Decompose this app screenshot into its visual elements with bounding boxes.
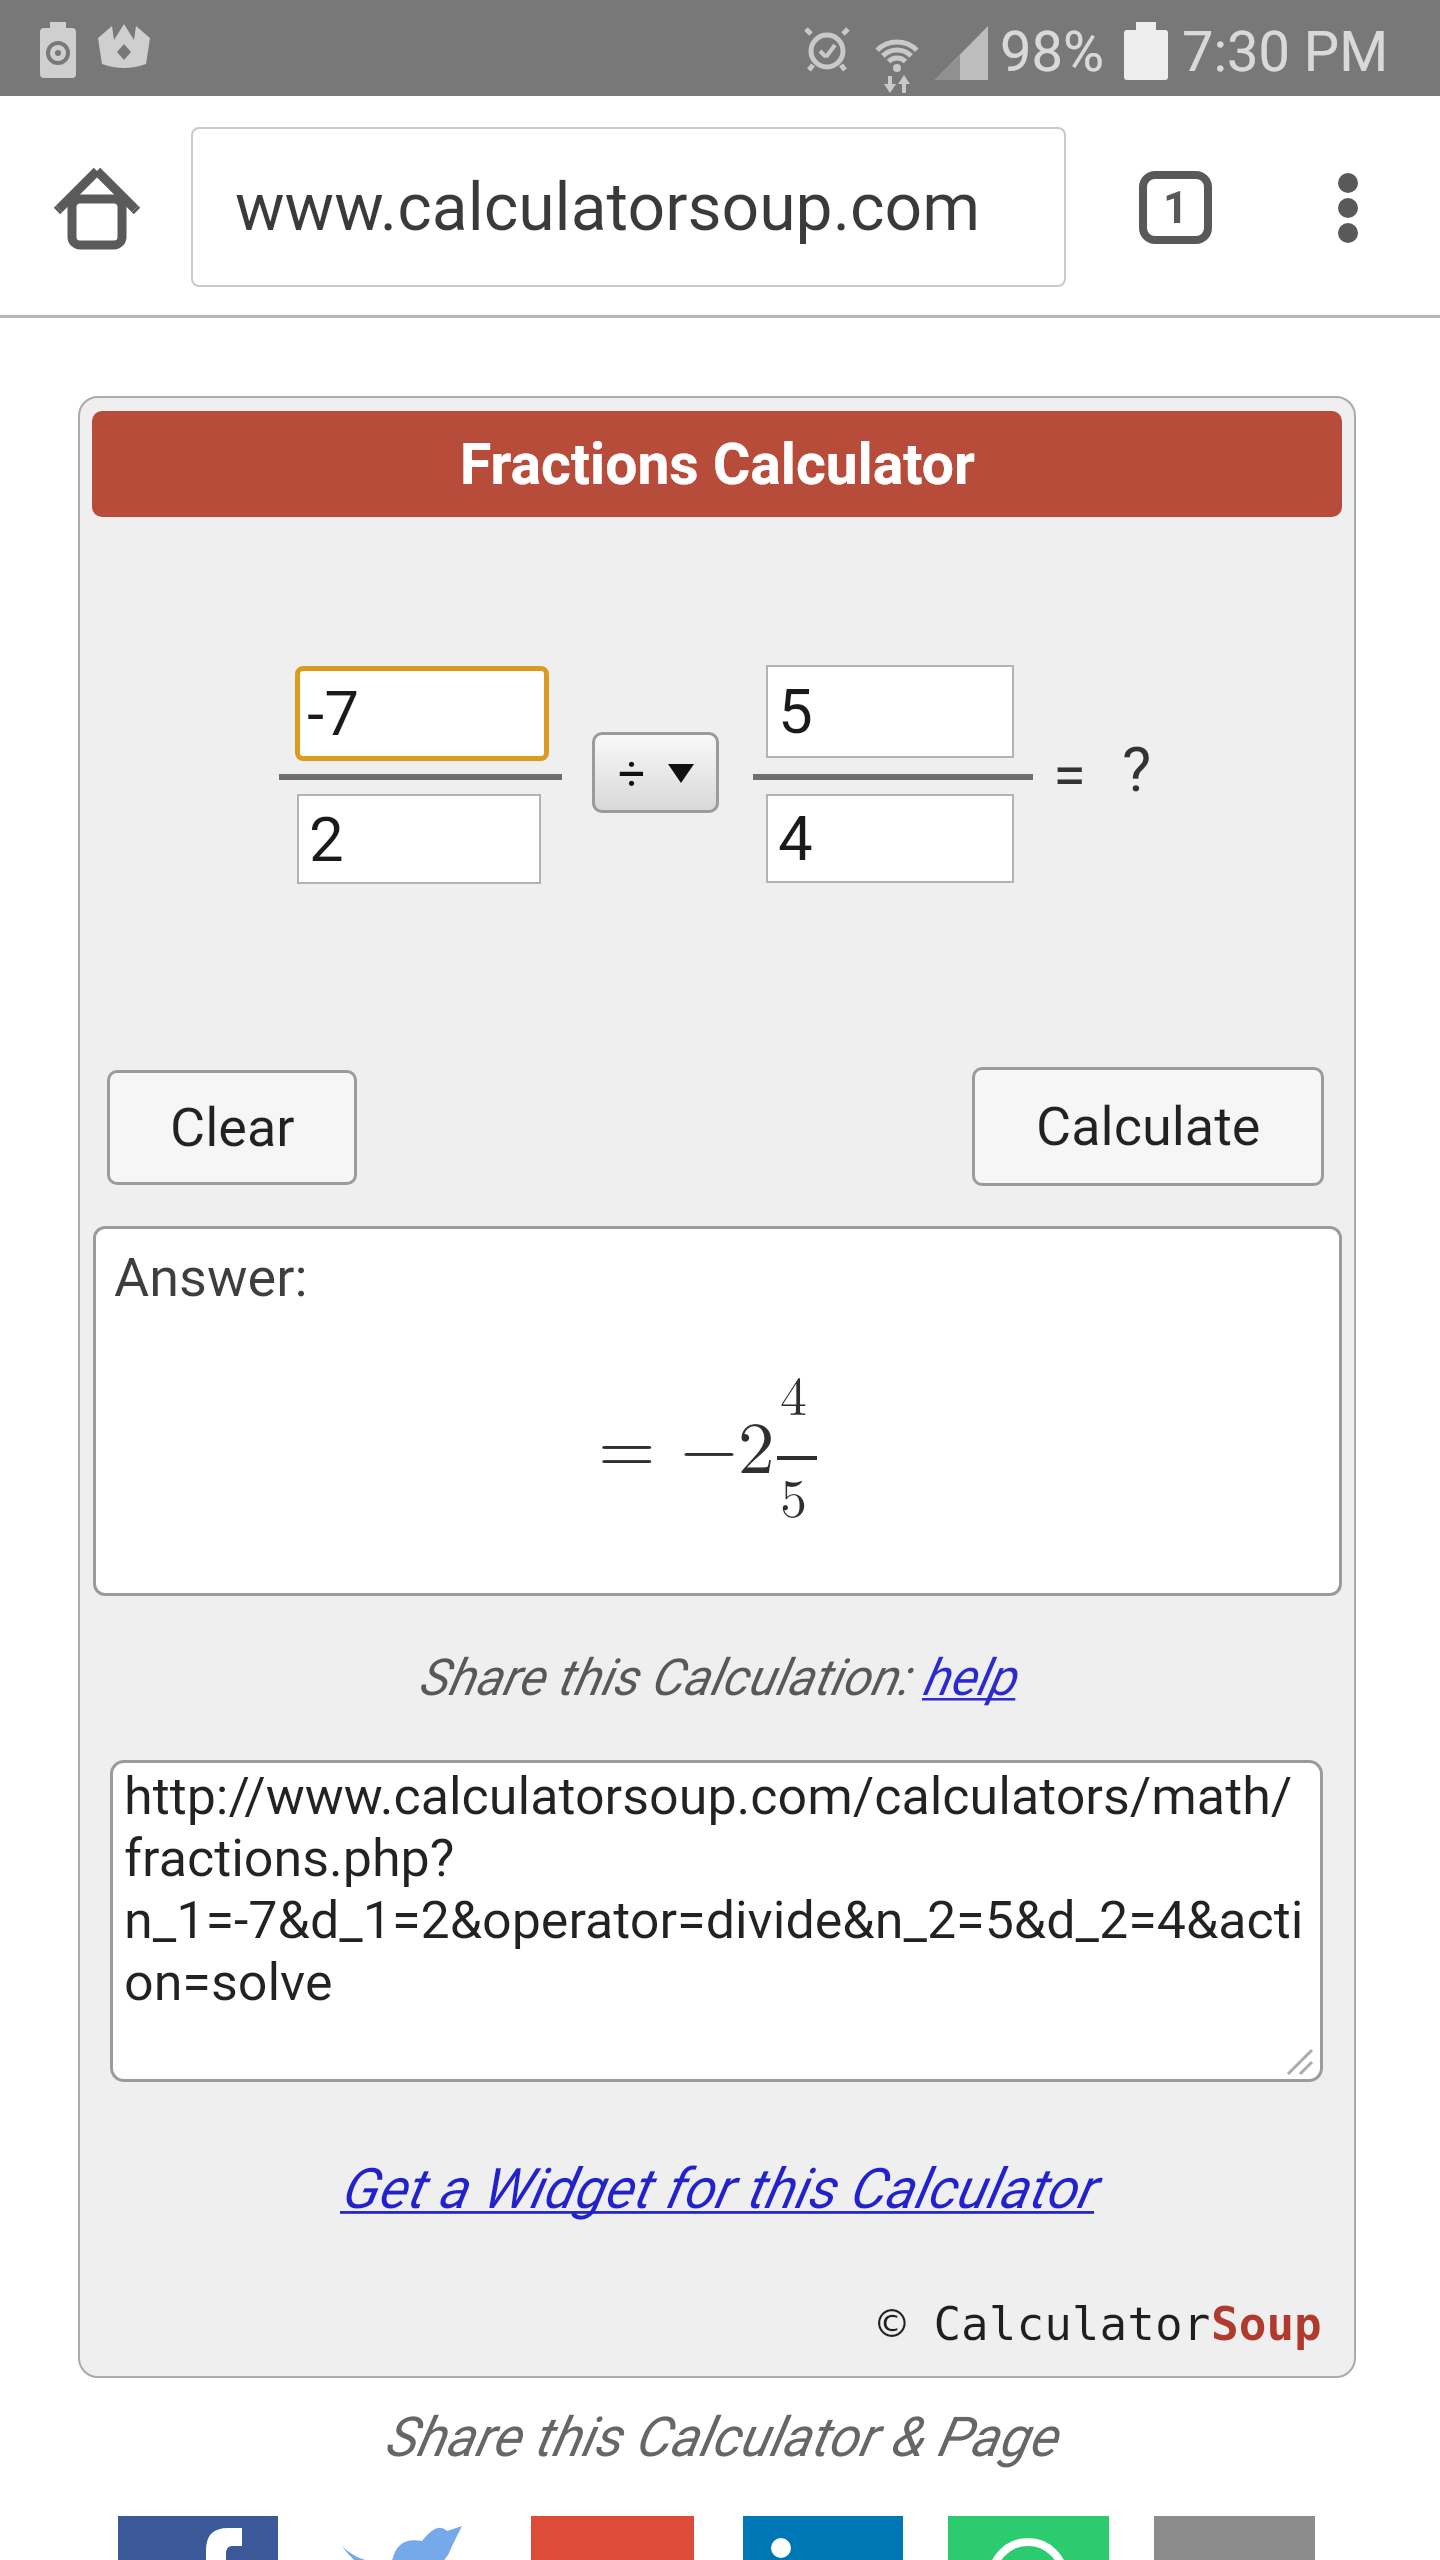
staticText: 5: [780, 1456, 807, 1533]
button[interactable]: [743, 2516, 903, 2560]
staticText: http://www.calculatorsoup.com/calculator…: [124, 1766, 1304, 2013]
staticText: 4: [778, 802, 813, 875]
staticText: Answer:: [114, 1246, 308, 1309]
staticText: Share this Calculation:: [418, 1648, 922, 1708]
button[interactable]: [118, 2516, 278, 2560]
staticText: 4: [780, 1354, 807, 1431]
staticText: Clear: [170, 1096, 295, 1159]
staticText: Calculate: [1036, 1095, 1261, 1158]
staticText: 5: [778, 675, 813, 748]
button[interactable]: Get a Widget for this Calculator: [340, 2156, 1095, 2222]
staticText: ?: [1122, 733, 1152, 806]
button[interactable]: 1: [1139, 171, 1212, 244]
staticText: -7: [307, 677, 359, 750]
staticText: 7:30 PM: [1182, 19, 1389, 85]
button[interactable]: ÷: [592, 732, 719, 813]
staticText: =: [1053, 740, 1086, 810]
staticText: Share this Calculator & Page: [384, 2405, 1057, 2469]
staticText: Fractions Calculator: [460, 431, 975, 498]
button[interactable]: Clear: [107, 1070, 357, 1185]
staticText: Soup: [1211, 2297, 1322, 2351]
button[interactable]: www.calculatorsoup.com: [191, 127, 1066, 287]
button[interactable]: [322, 2516, 484, 2560]
button[interactable]: [948, 2516, 1109, 2560]
button[interactable]: Calculate: [972, 1067, 1324, 1186]
button[interactable]: [55, 163, 139, 249]
button[interactable]: [1330, 171, 1366, 245]
staticText: 2: [309, 803, 344, 876]
staticText: © Calculator: [878, 2297, 1211, 2351]
staticText: = −2: [598, 1390, 775, 1495]
staticText: 1: [1163, 182, 1189, 234]
button[interactable]: help: [922, 1648, 1016, 1708]
staticText: ÷: [618, 745, 646, 801]
staticText: www.calculatorsoup.com: [235, 169, 981, 246]
staticText: 98%: [1000, 19, 1104, 85]
